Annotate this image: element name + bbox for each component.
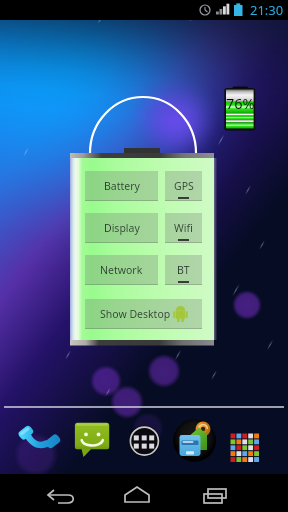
button[interactable]: Network — [85, 255, 158, 285]
staticText: BT — [177, 263, 190, 277]
button[interactable]: Widgets — [226, 420, 266, 460]
button[interactable]: Battery 76 percent — [222, 84, 258, 134]
button[interactable]: Battery — [85, 171, 158, 201]
staticText: 21:30 — [250, 1, 284, 19]
button[interactable]: Home — [123, 483, 165, 505]
button[interactable]: Wifi — [165, 213, 202, 243]
staticText: 76% — [226, 93, 255, 113]
staticText: GPS — [174, 179, 194, 193]
button[interactable]: BT — [165, 255, 202, 285]
staticText: Network — [100, 263, 143, 277]
button[interactable]: All apps — [124, 421, 164, 461]
staticText: Display — [104, 221, 140, 235]
button[interactable]: GPS — [165, 171, 202, 201]
button[interactable]: Back — [44, 483, 86, 505]
staticText: Wifi — [174, 221, 193, 235]
button[interactable]: Messaging — [72, 418, 112, 458]
button[interactable]: Tools — [172, 418, 216, 460]
button[interactable]: Phone — [22, 418, 60, 456]
button[interactable]: Display — [85, 213, 158, 243]
staticText: Battery — [104, 179, 140, 193]
staticText: Show Desktop — [100, 307, 171, 321]
button[interactable]: Show Desktop — [85, 299, 202, 329]
button[interactable]: Recent apps — [202, 483, 244, 505]
